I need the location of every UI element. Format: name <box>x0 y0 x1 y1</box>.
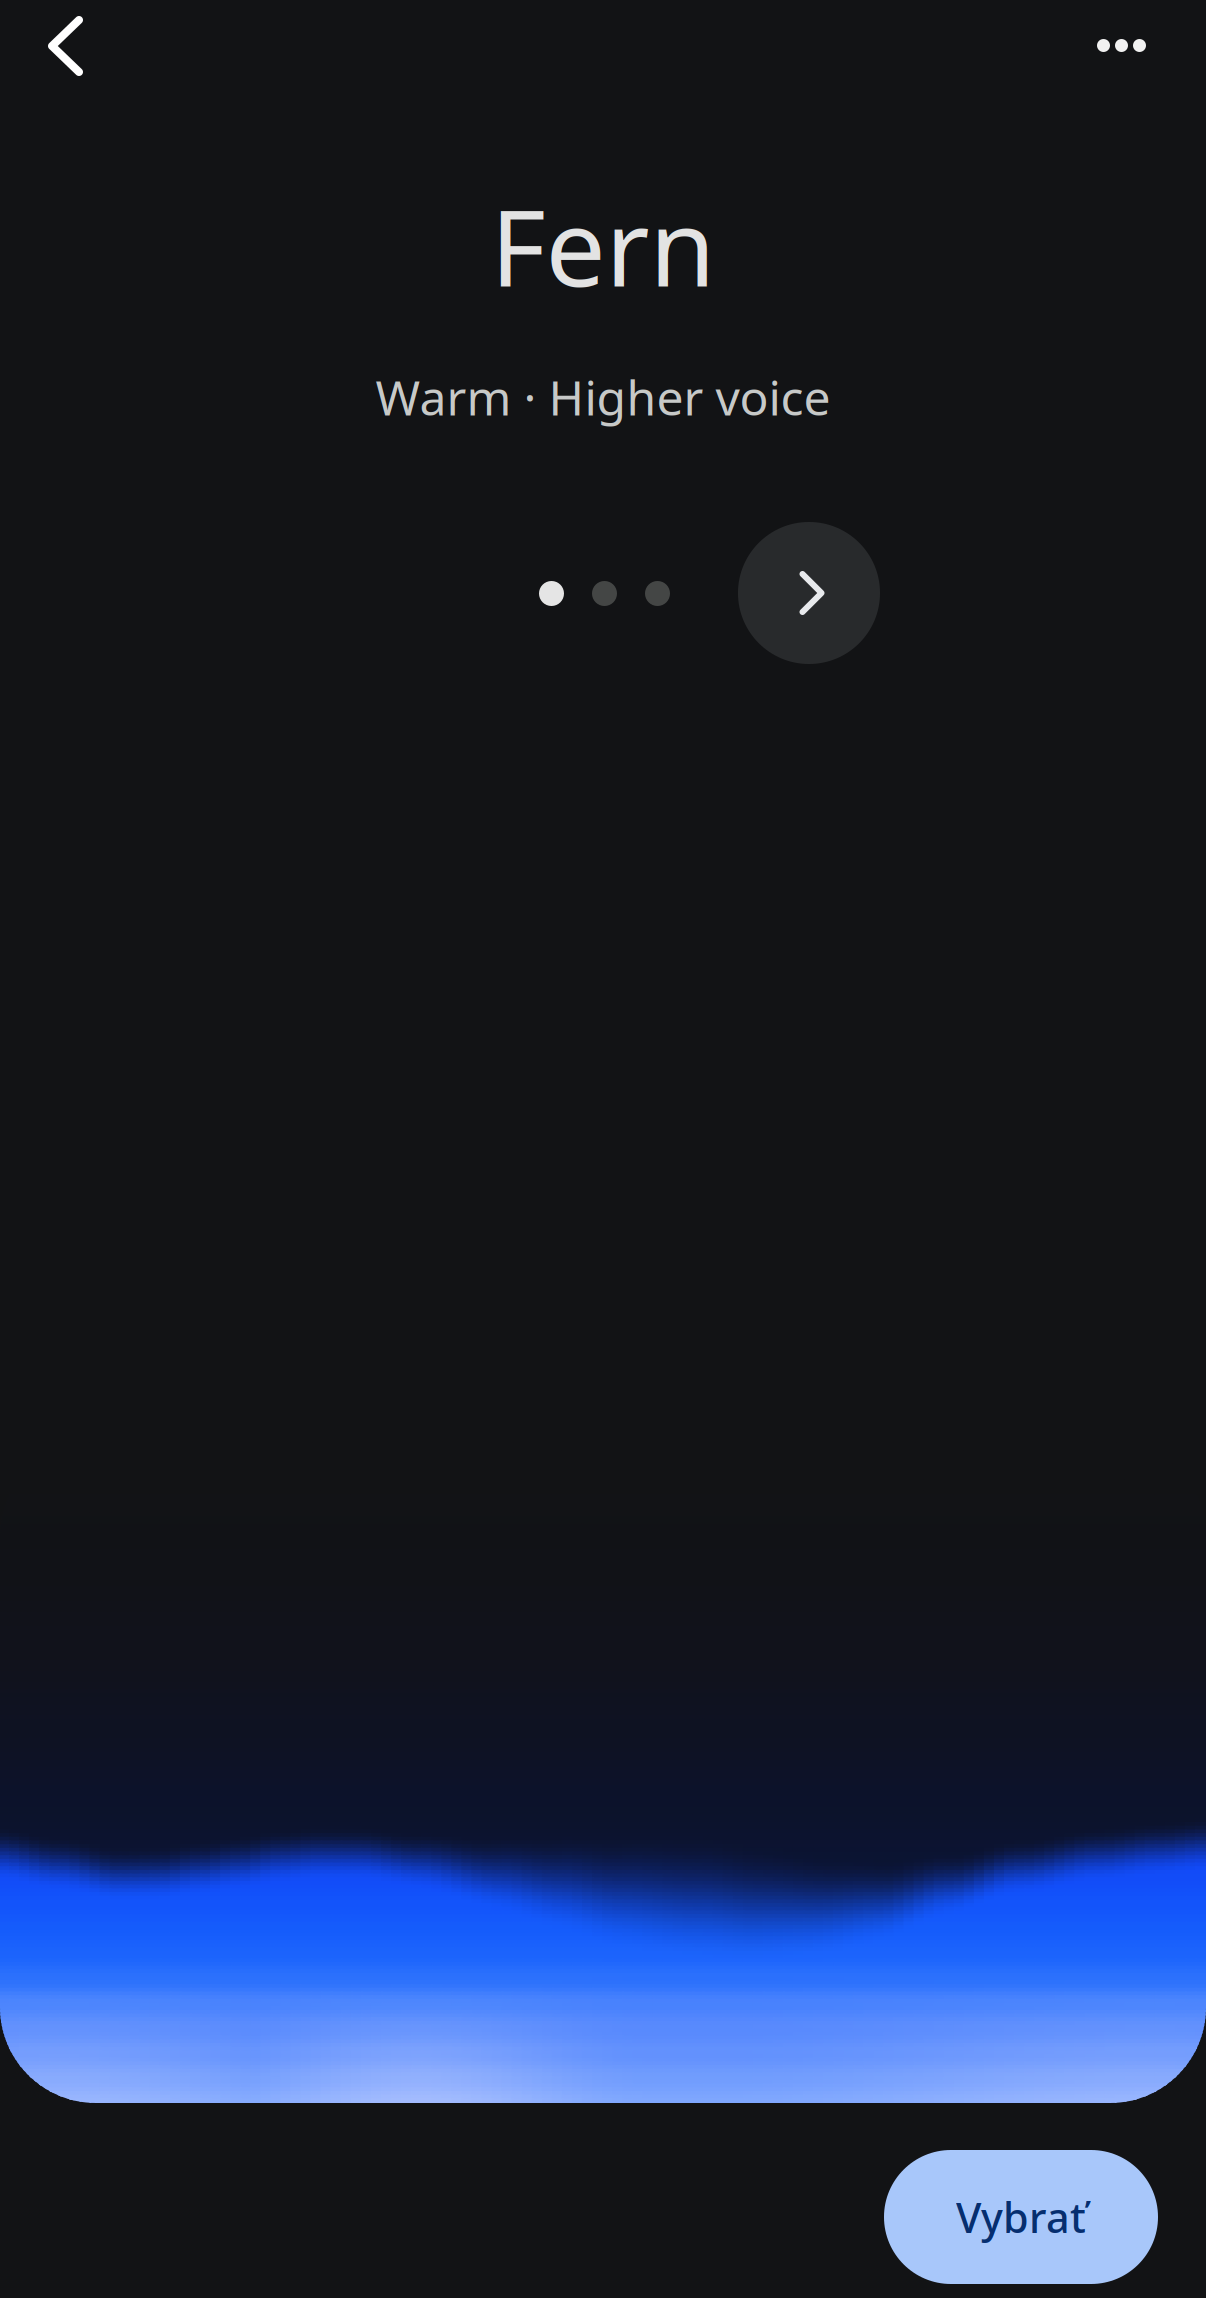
button[interactable]: Vybrať <box>884 2150 1158 2284</box>
staticText: Fern <box>490 174 715 316</box>
staticText: Vybrať <box>956 2190 1086 2244</box>
button[interactable]: Back <box>0 0 120 94</box>
staticText: Warm · Higher voice <box>375 365 830 429</box>
button[interactable]: More options <box>1058 0 1183 96</box>
button[interactable]: Next voice <box>738 522 880 664</box>
